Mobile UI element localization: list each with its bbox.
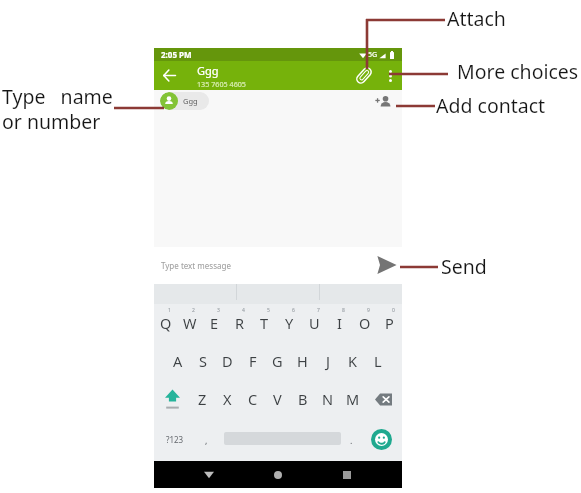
staticText: 4 <box>242 307 245 314</box>
staticText: Q <box>160 313 172 333</box>
button[interactable]: K <box>340 342 365 380</box>
button[interactable]: 1 <box>154 304 178 342</box>
staticText: 9 <box>367 307 370 314</box>
staticText: 2:05 PM <box>161 49 192 60</box>
button[interactable]: Emoji <box>361 418 402 461</box>
button[interactable]: Back <box>154 61 182 90</box>
button[interactable]: J <box>315 342 340 380</box>
button[interactable]: 4 <box>227 304 252 342</box>
staticText: 1 <box>168 307 171 314</box>
staticText: H <box>297 351 308 371</box>
button[interactable]: Recents <box>335 463 359 487</box>
button[interactable]: A <box>165 342 190 380</box>
button[interactable]: Z <box>190 380 215 418</box>
button[interactable]: . <box>342 418 361 461</box>
button[interactable]: S <box>190 342 215 380</box>
button[interactable]: 9 <box>352 304 377 342</box>
staticText: 135 7605 4605 <box>197 79 246 89</box>
staticText: C <box>248 389 258 409</box>
button[interactable]: More choices <box>378 61 402 90</box>
staticText: 5 <box>267 307 270 314</box>
button[interactable]: 8 <box>327 304 352 342</box>
staticText: B <box>298 389 308 409</box>
staticText: Type text message <box>161 260 231 271</box>
staticText: 7 <box>317 307 320 314</box>
button[interactable]: Add contact <box>375 94 392 111</box>
staticText: ?123 <box>166 434 184 445</box>
staticText: 6 <box>292 307 295 314</box>
button[interactable]: Space <box>216 418 342 461</box>
staticText: S <box>199 351 207 371</box>
button[interactable]: N <box>315 380 340 418</box>
staticText: Add contact <box>436 92 546 119</box>
button[interactable]: M <box>340 380 365 418</box>
staticText: , <box>205 434 208 446</box>
button[interactable]: 3 <box>202 304 227 342</box>
staticText: T <box>260 313 269 333</box>
staticText: K <box>348 351 357 371</box>
button[interactable]: V <box>265 380 290 418</box>
button[interactable]: 7 <box>302 304 327 342</box>
staticText: 5G <box>368 50 378 60</box>
button[interactable]: , <box>196 418 216 461</box>
staticText: 2 <box>192 307 195 314</box>
staticText: X <box>223 389 232 409</box>
staticText: Ggg <box>183 96 198 106</box>
staticText: O <box>359 313 371 333</box>
staticText: 8 <box>342 307 345 314</box>
staticText: I <box>337 313 342 333</box>
staticText: Attach <box>447 5 506 32</box>
staticText: W <box>183 313 197 333</box>
button[interactable]: 2 <box>178 304 202 342</box>
staticText: Type name or number <box>2 83 113 135</box>
button[interactable]: 6 <box>277 304 302 342</box>
button[interactable]: H <box>290 342 315 380</box>
button[interactable]: C <box>240 380 265 418</box>
staticText: G <box>272 351 283 371</box>
button[interactable]: Back <box>197 463 221 487</box>
staticText: L <box>374 351 382 371</box>
button[interactable]: D <box>215 342 240 380</box>
staticText: E <box>210 313 219 333</box>
staticText: 3 <box>217 307 220 314</box>
button[interactable]: 0 <box>377 304 402 342</box>
staticText: R <box>235 313 245 333</box>
button[interactable]: Ggg <box>160 92 209 110</box>
button[interactable]: F <box>240 342 265 380</box>
staticText: More choices <box>457 58 579 85</box>
button[interactable]: B <box>290 380 315 418</box>
button[interactable]: Send <box>376 254 398 276</box>
staticText: F <box>249 351 257 371</box>
staticText: Ggg <box>197 63 219 78</box>
button[interactable]: X <box>215 380 240 418</box>
staticText: J <box>326 351 330 371</box>
staticText: Z <box>198 389 207 409</box>
button[interactable]: ?123 <box>154 418 196 461</box>
staticText: U <box>309 313 320 333</box>
button[interactable]: 5 <box>252 304 277 342</box>
button[interactable]: Attach <box>344 61 378 90</box>
button[interactable]: G <box>265 342 290 380</box>
staticText: M <box>346 389 360 409</box>
button[interactable]: Home <box>266 463 290 487</box>
staticText: 0 <box>392 307 395 314</box>
button[interactable]: Shift <box>154 380 190 418</box>
staticText: P <box>385 313 394 333</box>
staticText: V <box>273 389 282 409</box>
staticText: . <box>350 434 353 446</box>
staticText: Send <box>441 253 487 280</box>
button[interactable]: L <box>365 342 390 380</box>
staticText: D <box>222 351 233 371</box>
staticText: Y <box>285 313 294 333</box>
staticText: A <box>173 351 183 371</box>
staticText: N <box>322 389 334 409</box>
button[interactable]: Backspace <box>365 380 402 418</box>
